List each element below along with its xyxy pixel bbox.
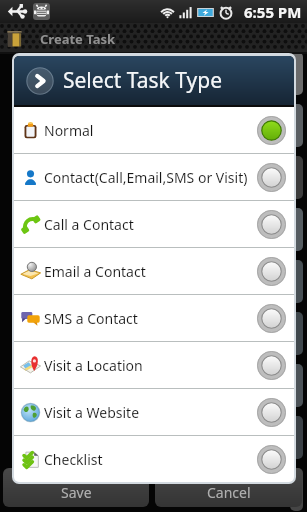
button[interactable]: Visit a Website bbox=[14, 389, 294, 435]
button[interactable]: Normal bbox=[14, 107, 294, 153]
staticText: 6:55 PM bbox=[244, 2, 302, 22]
staticText: Cancel bbox=[207, 483, 251, 502]
button[interactable]: Checklist bbox=[14, 436, 294, 482]
staticText: Checklist bbox=[44, 450, 254, 469]
staticText: Visit a Website bbox=[44, 403, 254, 422]
staticText: Save bbox=[61, 483, 92, 502]
button[interactable]: Contact(Call,Email,SMS or Visit) bbox=[14, 154, 294, 200]
button[interactable]: Call a Contact bbox=[14, 201, 294, 247]
staticText: Email a Contact bbox=[44, 262, 254, 281]
button[interactable]: Save bbox=[3, 468, 149, 507]
staticText: Normal bbox=[44, 121, 254, 140]
staticText: Create Task bbox=[40, 30, 116, 48]
button[interactable]: SMS a Contact bbox=[14, 295, 294, 341]
button[interactable]: Email a Contact bbox=[14, 248, 294, 294]
staticText: Call a Contact bbox=[44, 215, 254, 234]
button[interactable]: Cancel bbox=[155, 468, 302, 507]
staticText: Contact(Call,Email,SMS or Visit) bbox=[44, 168, 254, 187]
staticText: Select Task Type bbox=[63, 66, 222, 95]
staticText: SMS a Contact bbox=[44, 309, 254, 328]
button[interactable]: Visit a Location bbox=[14, 342, 294, 388]
staticText: Visit a Location bbox=[44, 356, 254, 375]
